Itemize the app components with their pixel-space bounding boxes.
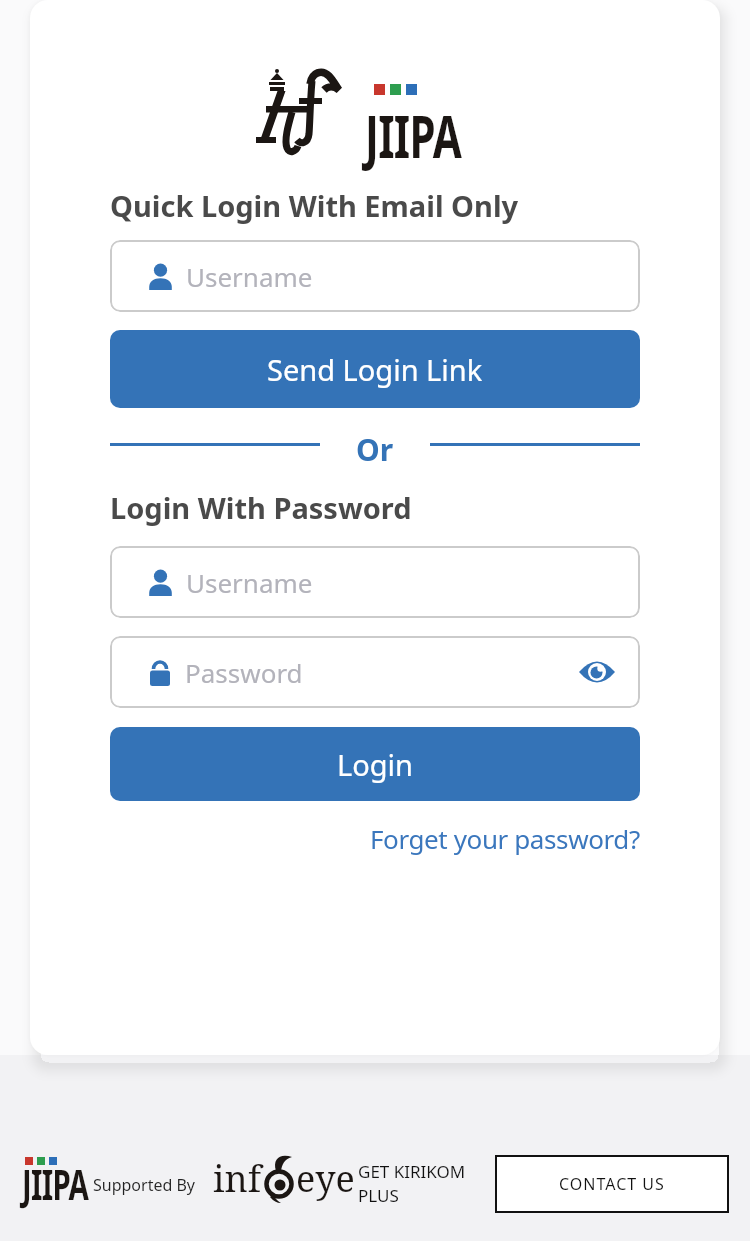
button[interactable]: Username xyxy=(110,240,640,312)
staticText: JIIPA xyxy=(365,94,462,176)
staticText: eye xyxy=(296,1154,355,1203)
staticText: Login xyxy=(337,745,413,784)
staticText: inf xyxy=(213,1154,262,1203)
staticText: GET KIRIKOM PLUS xyxy=(358,1160,466,1207)
staticText: JIIPA xyxy=(22,1155,88,1212)
button[interactable]: Password xyxy=(110,636,640,708)
staticText: Supported By xyxy=(93,1174,196,1196)
button[interactable] xyxy=(578,656,616,688)
staticText: Password xyxy=(185,655,303,690)
staticText: Username xyxy=(186,565,313,600)
staticText: Login With Password xyxy=(110,488,412,527)
staticText: Send Login Link xyxy=(267,350,483,389)
staticText: Username xyxy=(186,259,313,294)
staticText: Quick Login With Email Only xyxy=(110,186,519,225)
staticText: Or xyxy=(356,429,394,470)
button[interactable]: Send Login Link xyxy=(110,330,640,408)
button[interactable]: Username xyxy=(110,546,640,618)
button[interactable]: Forget your password? xyxy=(370,821,640,856)
button[interactable]: CONTACT US xyxy=(495,1155,729,1213)
button[interactable]: Login xyxy=(110,727,640,801)
staticText: CONTACT US xyxy=(559,1173,665,1195)
